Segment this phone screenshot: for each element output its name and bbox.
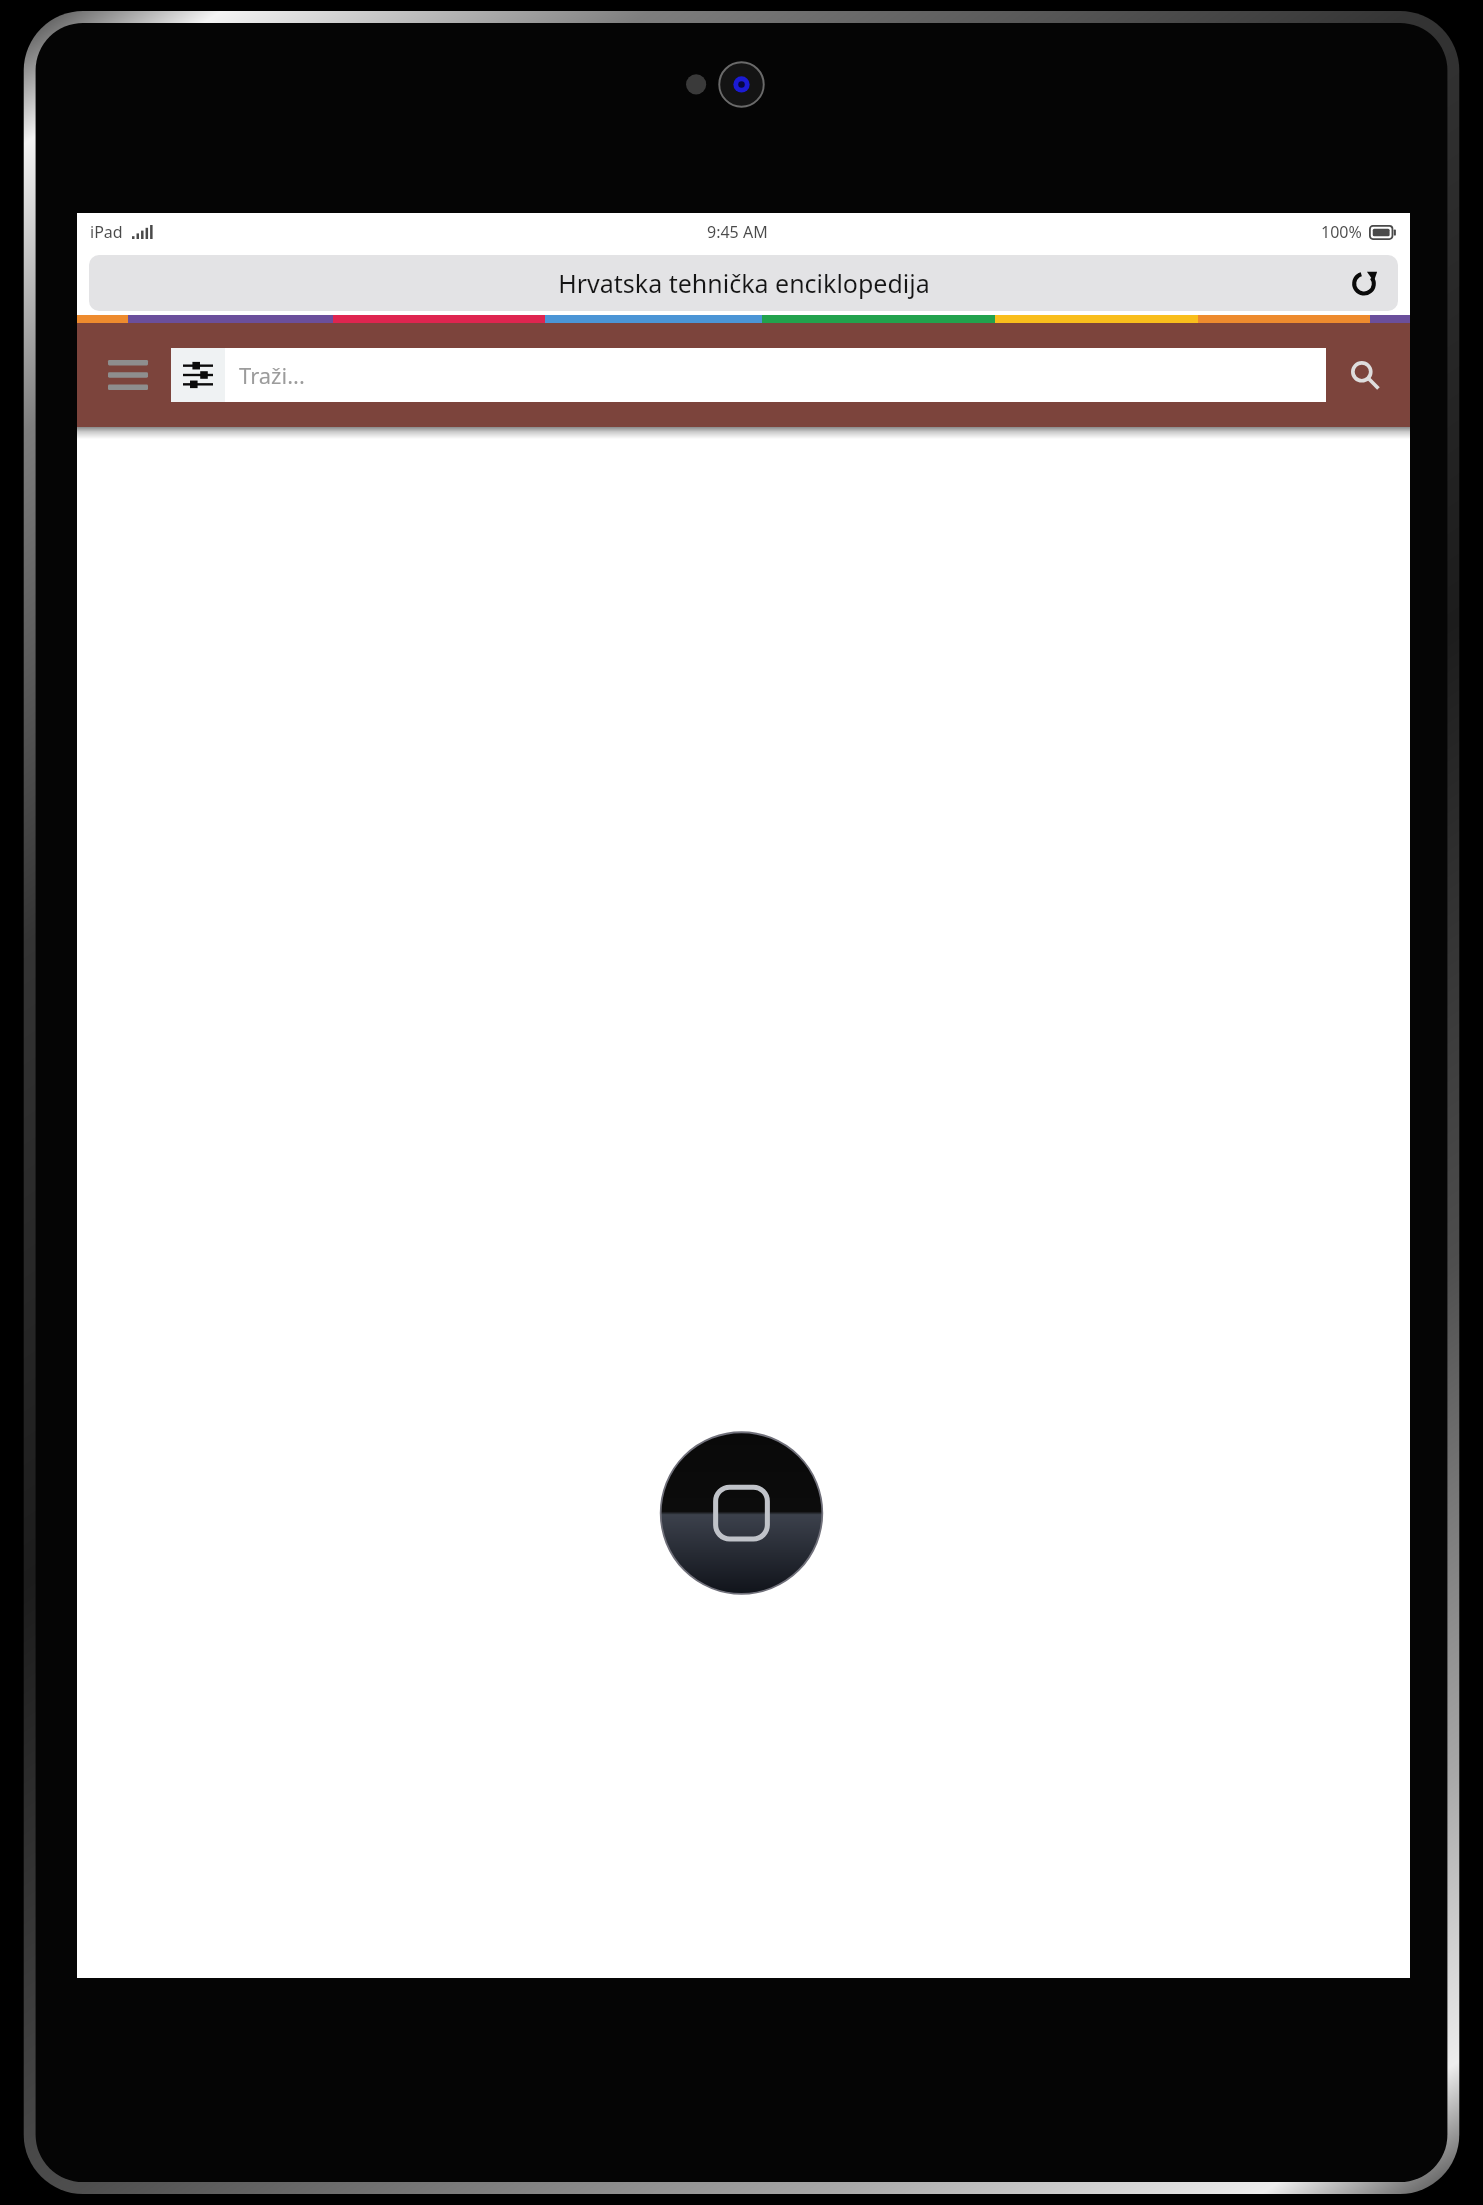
- button[interactable]: Search: [1340, 350, 1390, 400]
- staticText: 9:45 AM: [707, 221, 768, 243]
- button[interactable]: Hrvatska tehnička enciklopedija: [89, 255, 1398, 311]
- button[interactable]: Traži...: [225, 348, 1326, 402]
- button[interactable]: Reload: [1344, 263, 1384, 303]
- staticText: 100%: [1321, 221, 1362, 243]
- button[interactable]: Search filters: [171, 348, 225, 402]
- button[interactable]: Menu: [101, 348, 155, 402]
- staticText: Traži...: [239, 360, 305, 390]
- staticText: Hrvatska tehnička enciklopedija: [558, 266, 930, 300]
- staticText: iPad: [90, 221, 123, 243]
